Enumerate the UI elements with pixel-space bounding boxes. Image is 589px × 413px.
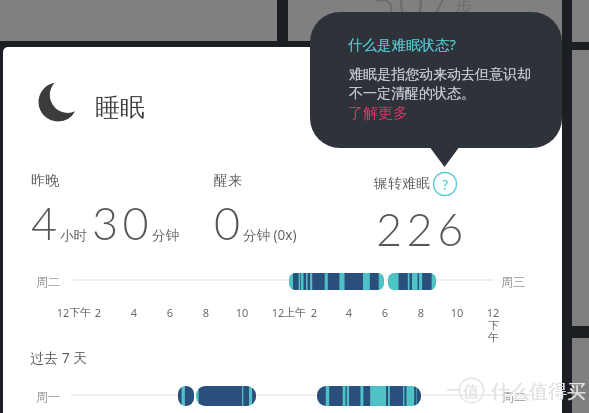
staticText: 2 [299,305,329,320]
other: 睡眠 [38,82,78,122]
staticText: 8 [406,305,436,320]
staticText: 值 [463,382,479,402]
staticText: 4 [119,305,149,320]
staticText: 下午 [69,305,91,319]
staticText: 分钟 (0x) [243,226,297,244]
button[interactable]: 了解更多 [348,104,408,123]
staticText: 分钟 [152,227,179,244]
staticText: 上午 [284,305,306,319]
button[interactable]: 什么是难眠状态? [310,12,562,148]
staticText: 昨晚 [31,172,59,190]
button[interactable]: 什么是难眠状态 [433,172,457,196]
staticText: 4 [31,196,62,250]
staticText: 12 [48,305,78,320]
staticText: 醒来 [214,172,242,190]
staticText: 12 [263,305,293,320]
staticText: 12 [478,305,508,320]
staticText: 10 [442,305,472,320]
staticText: 507 [371,0,454,29]
staticText: 什么是难眠状态? [348,34,456,54]
staticText: 8 [191,305,221,320]
staticText: 周三 [501,274,525,289]
staticText: 下 午 [488,318,499,344]
staticText: 周二 [502,389,526,404]
staticText: 难眠是指您动来动去但意识却 不一定清醒的状态。 [349,66,531,102]
staticText: 过去 7 天 [30,348,88,367]
staticText: 什么值得买 [491,380,586,404]
staticText: ? [442,176,449,193]
staticText: 周二 [36,274,60,289]
staticText: 小时 [60,227,87,244]
staticText: 辗转难眠 [374,175,430,193]
staticText: 2 [83,305,113,320]
staticText: 6 [370,305,400,320]
staticText: 30 [92,196,154,250]
staticText: 10 [227,305,257,320]
staticText: 0 [214,196,245,250]
staticText: 睡眠 [95,92,145,123]
button[interactable]: 睡眠 [38,82,168,122]
staticText: 步 [455,0,472,17]
staticText: 6 [155,305,185,320]
staticText: 4 [334,305,364,320]
staticText: 226 [376,202,468,256]
staticText: 周一 [36,389,60,404]
